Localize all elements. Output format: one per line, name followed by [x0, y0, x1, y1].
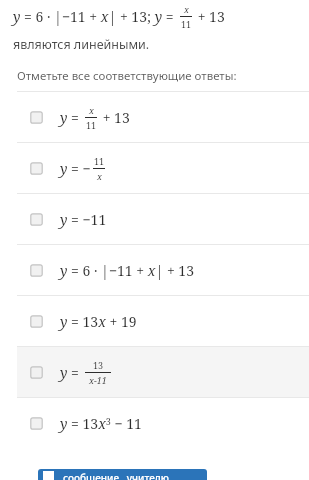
button[interactable]: y = − [0, 143, 309, 193]
staticText: 13 [93, 359, 104, 371]
staticText: y = 13x + 19 [60, 312, 137, 331]
staticText: y = 6 · |−11 + x| + 13 [60, 261, 195, 280]
button[interactable]: y = −11 [0, 194, 309, 244]
button[interactable]: y = [0, 92, 309, 142]
button[interactable]: y = 6 · |−11 + x| + 13 [0, 245, 309, 295]
staticText: 11 [94, 155, 105, 167]
staticText: + 13 [99, 108, 130, 127]
staticText: + 13 [194, 7, 225, 26]
button[interactable]: y = [17, 347, 309, 397]
staticText: x [89, 104, 94, 116]
staticText: x [184, 3, 189, 15]
staticText: y = −11 [60, 210, 107, 229]
button[interactable]: y = 13x3 − 11 [0, 398, 309, 448]
staticText: 11 [86, 119, 97, 131]
staticText: x−11 [89, 374, 107, 386]
staticText: y = [60, 363, 83, 382]
staticText: y = [60, 108, 83, 127]
staticText: 11 [181, 18, 192, 30]
staticText: y = 6 · |−11 + x| + 13; y = [13, 7, 178, 26]
button[interactable]: y = 13x + 19 [0, 296, 309, 346]
staticText: y = 13x3 − 11 [60, 414, 142, 433]
staticText: x [97, 170, 102, 182]
staticText: являются линейными. [13, 36, 150, 53]
staticText: сообщение учителю [63, 471, 169, 480]
staticText: y = − [60, 159, 91, 178]
button[interactable]: Сообщение учителю [38, 469, 207, 480]
staticText: Отметьте все соответствующие ответы: [17, 68, 237, 84]
